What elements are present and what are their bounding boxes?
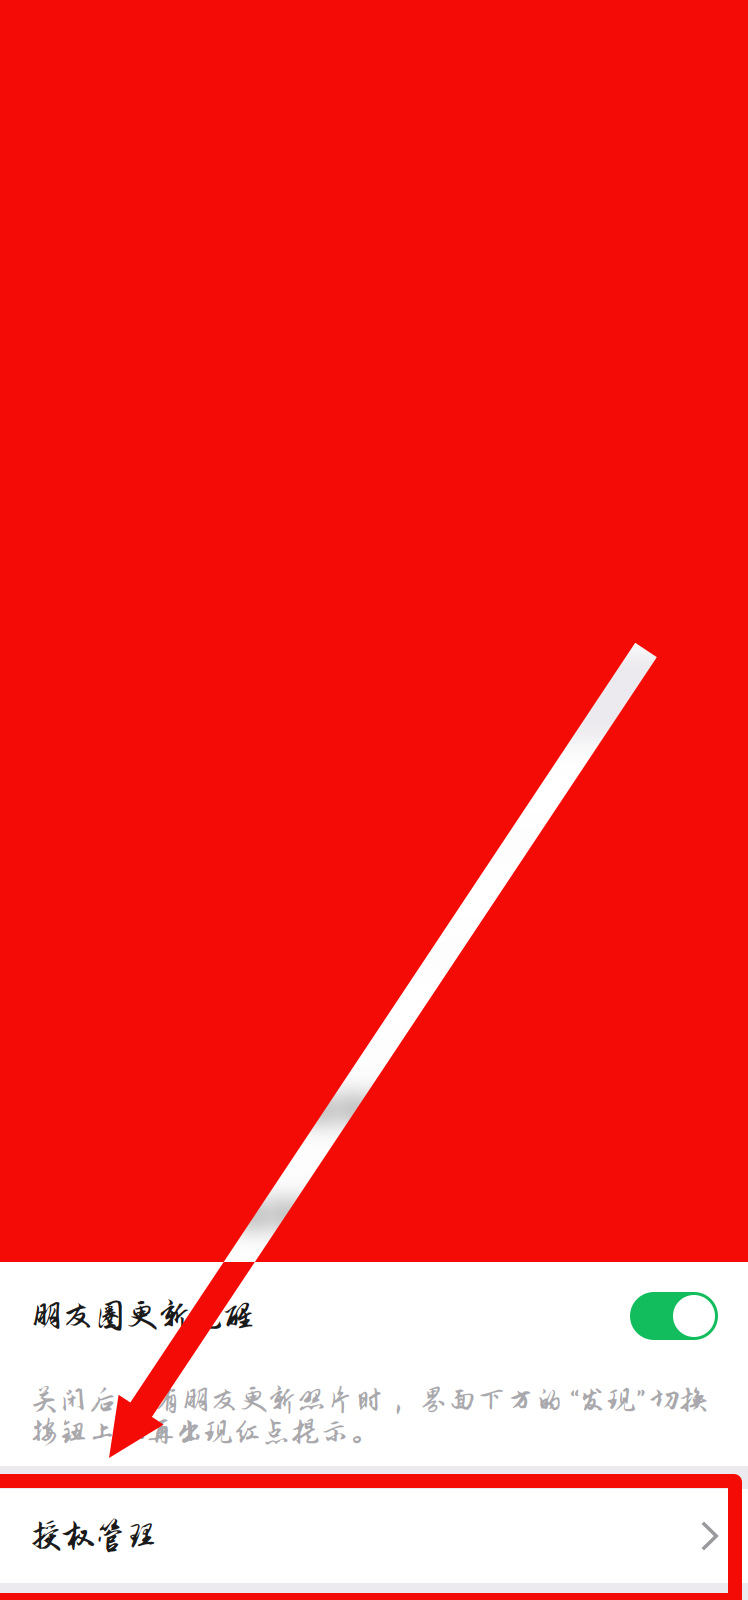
button[interactable]: 通知消息样式 [0,556,748,652]
button[interactable]: 朋友圈更新提醒 [0,1266,748,1466]
button[interactable]: 新消息提示音 [0,952,748,1055]
staticText: Baidu 经验 [542,1494,708,1538]
staticText: 在锁屏时显示消息通知的详细内容 [30,1195,540,1233]
button[interactable]: 在锁定屏幕上显示消息通知 [0,1057,748,1160]
staticText: 授权管理 [30,1518,158,1554]
button[interactable]: 免打扰模式 [0,847,748,950]
staticText: 关闭后， 有朋友更新照片时， 界面下方的 “发现” 切换按钮上不再出现红点提示。 [30,1384,708,1448]
staticText: 在锁定屏幕上显示消息通知 [30,1090,438,1127]
button[interactable]: 声音与振动设置 [0,742,748,845]
staticText: 朋友圈更新提醒 [30,1298,254,1334]
staticText: jingyan.baidu.com [545,1540,705,1562]
button[interactable]: 授权管理 [0,1489,748,1583]
button[interactable]: 在锁屏时显示消息通知的详细内容 [0,1162,748,1266]
